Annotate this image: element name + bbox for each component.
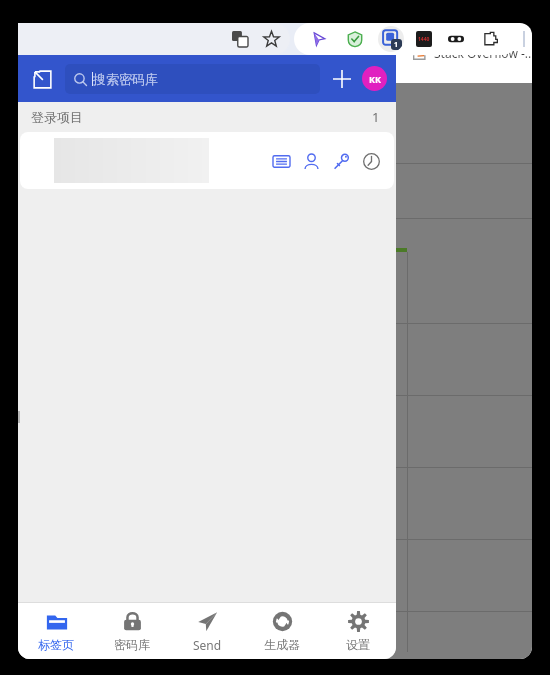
staticText: 密码库	[114, 637, 150, 652]
button[interactable]: 生成器	[245, 603, 319, 659]
button[interactable]: Extensions	[480, 29, 500, 49]
button[interactable]: Send	[170, 603, 244, 659]
button[interactable]: Cursor	[308, 28, 330, 50]
button[interactable]: Copy TOTP	[358, 148, 384, 174]
button[interactable]: Copy notes	[268, 148, 294, 174]
staticText: 生成器	[264, 637, 300, 652]
button[interactable]: Password manager	[378, 26, 404, 52]
button[interactable]: Translate	[230, 29, 250, 49]
button[interactable]: Copy username	[298, 148, 324, 174]
button[interactable]: Shield	[344, 28, 366, 50]
button[interactable]: 1440	[414, 29, 434, 49]
staticText: Stack Overflow -..	[434, 45, 532, 61]
button[interactable]: Bookmark	[261, 29, 281, 49]
staticText: 设置	[346, 637, 370, 652]
button[interactable]: Add item	[326, 63, 358, 95]
button[interactable]: 设置	[321, 603, 395, 659]
staticText: 登录项目	[31, 109, 83, 125]
staticText: 1440	[418, 36, 430, 43]
button[interactable]: Pop out	[27, 64, 57, 94]
staticText: 1	[394, 40, 399, 50]
button[interactable]: Glasses	[446, 29, 466, 49]
button[interactable]: 密码库	[95, 603, 169, 659]
staticText: 标签页	[38, 637, 74, 652]
staticText: KK	[369, 73, 381, 85]
button[interactable]: 搜索密码库	[65, 64, 320, 94]
button[interactable]: Copy notes	[20, 132, 394, 189]
button[interactable]: Copy password	[328, 148, 354, 174]
staticText: 1	[372, 108, 380, 126]
button[interactable]: 标签页	[19, 603, 93, 659]
staticText: Send	[193, 637, 222, 653]
staticText: 搜索密码库	[93, 71, 158, 87]
button[interactable]: Account	[362, 66, 387, 91]
